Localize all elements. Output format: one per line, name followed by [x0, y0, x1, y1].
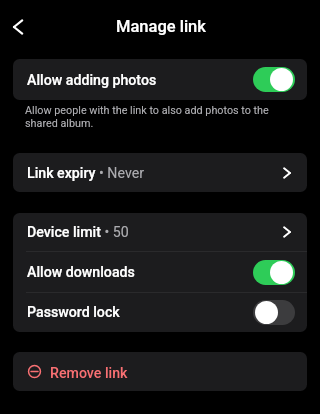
button[interactable]: Remove link	[13, 352, 307, 391]
staticText: Allow downloads	[27, 264, 135, 281]
staticText: Device limit • 50	[27, 224, 129, 241]
button[interactable]: Allow downloads	[253, 260, 295, 285]
button[interactable]: Allow adding photos	[13, 59, 307, 100]
button[interactable]: Back	[0, 6, 40, 46]
button[interactable]: Password lock	[13, 293, 307, 332]
button[interactable]: Allow downloads	[13, 252, 307, 292]
button[interactable]: Device limit • 50	[13, 213, 307, 251]
staticText: Password lock	[27, 304, 120, 321]
staticText: Manage link	[116, 17, 206, 36]
button[interactable]: Link expiry • Never	[13, 153, 307, 192]
button[interactable]: Password lock	[253, 300, 295, 325]
button[interactable]: Allow adding photos	[253, 67, 295, 92]
staticText: Allow people with the link to also add p…	[25, 104, 290, 130]
staticText: Allow adding photos	[27, 72, 157, 89]
staticText: Link expiry • Never	[27, 165, 145, 182]
staticText: Remove link	[50, 365, 128, 382]
